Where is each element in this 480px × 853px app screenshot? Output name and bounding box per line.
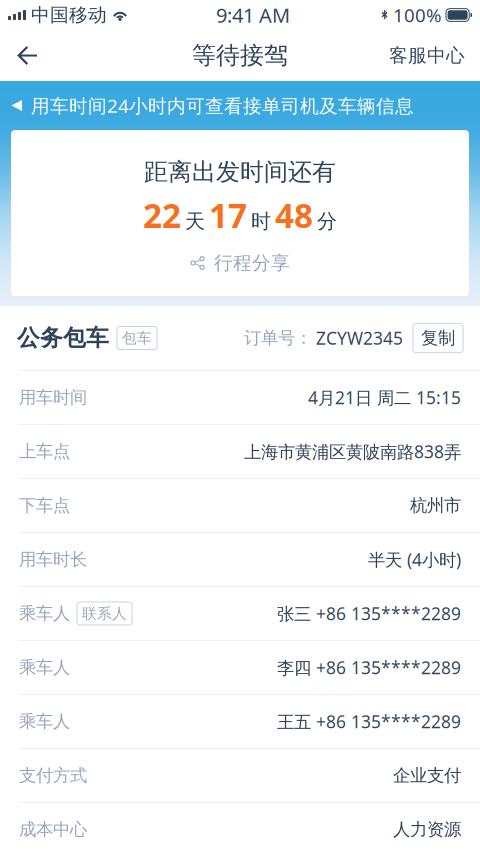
staticText: ZCYW2345 [316,326,403,349]
staticText: 下车点 [19,495,70,516]
staticText: 行程分享 [214,251,290,274]
staticText: 企业支付 [393,765,461,786]
button[interactable]: 客服中心 [374,30,480,81]
staticText: 9:41 AM [216,2,290,28]
staticText: 杭州市 [410,495,461,516]
staticText: 100% [393,3,442,27]
button[interactable]: 返回 [0,30,56,81]
staticText: 客服中心 [389,44,465,67]
staticText: 乘车人 [19,603,70,624]
staticText: 时 [251,209,271,234]
staticText: 乘车人 [19,657,70,678]
staticText: 17 [209,193,247,237]
staticText: 王五 +86 135****2289 [277,710,461,733]
button[interactable]: 行程分享 [180,251,300,275]
staticText: 人力资源 [393,819,461,840]
staticText: 用车时间 [19,387,87,408]
staticText: 半天 (4小时) [368,548,461,571]
staticText: 上海市黄浦区黄陂南路838弄 [244,440,461,463]
staticText: 成本中心 [19,819,87,840]
staticText: 中国移动 [31,3,107,26]
staticText: 支付方式 [19,765,87,786]
staticText: 公务包车 [17,324,109,352]
staticText: 等待接驾 [192,41,288,70]
staticText: 距离出发时间还有 [144,157,336,187]
staticText: 分 [317,209,337,234]
staticText: 48 [275,193,313,237]
staticText: 用车时间24小时内可查看接单司机及车辆信息 [31,93,414,118]
staticText: 用车时长 [19,549,87,570]
staticText: 4月21日 周二 15:15 [308,386,461,409]
staticText: 天 [185,209,205,234]
staticText: 复制 [421,327,455,349]
staticText: 订单号： [244,327,312,349]
staticText: 22 [143,193,181,237]
staticText: 包车 [122,329,152,347]
staticText: 张三 +86 135****2289 [277,602,461,625]
staticText: 李四 +86 135****2289 [277,656,461,679]
button[interactable]: 复制 [413,323,463,353]
staticText: 乘车人 [19,711,70,732]
staticText: 联系人 [82,604,127,622]
staticText: 上车点 [19,441,70,462]
